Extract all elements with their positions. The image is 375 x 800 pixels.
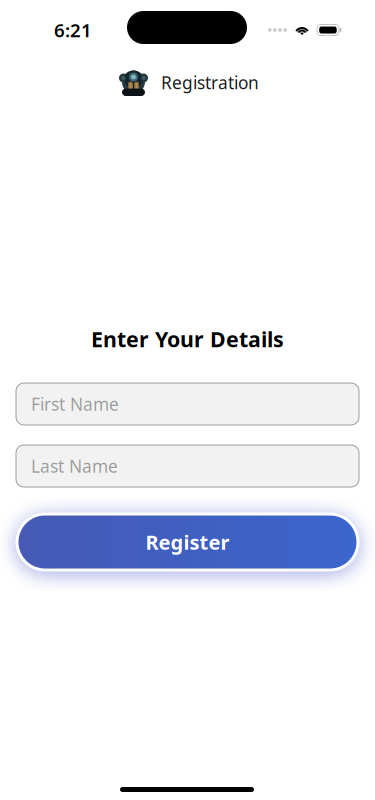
staticText: 6:21 bbox=[54, 18, 92, 42]
staticText: Enter Your Details bbox=[91, 325, 284, 353]
button[interactable]: Register bbox=[17, 514, 358, 570]
button[interactable]: Last Name bbox=[16, 445, 359, 487]
staticText: Registration bbox=[161, 71, 259, 94]
button[interactable]: First Name bbox=[16, 383, 359, 425]
staticText: First Name bbox=[31, 392, 119, 415]
staticText: Register bbox=[145, 529, 229, 555]
staticText: Last Name bbox=[31, 454, 118, 477]
